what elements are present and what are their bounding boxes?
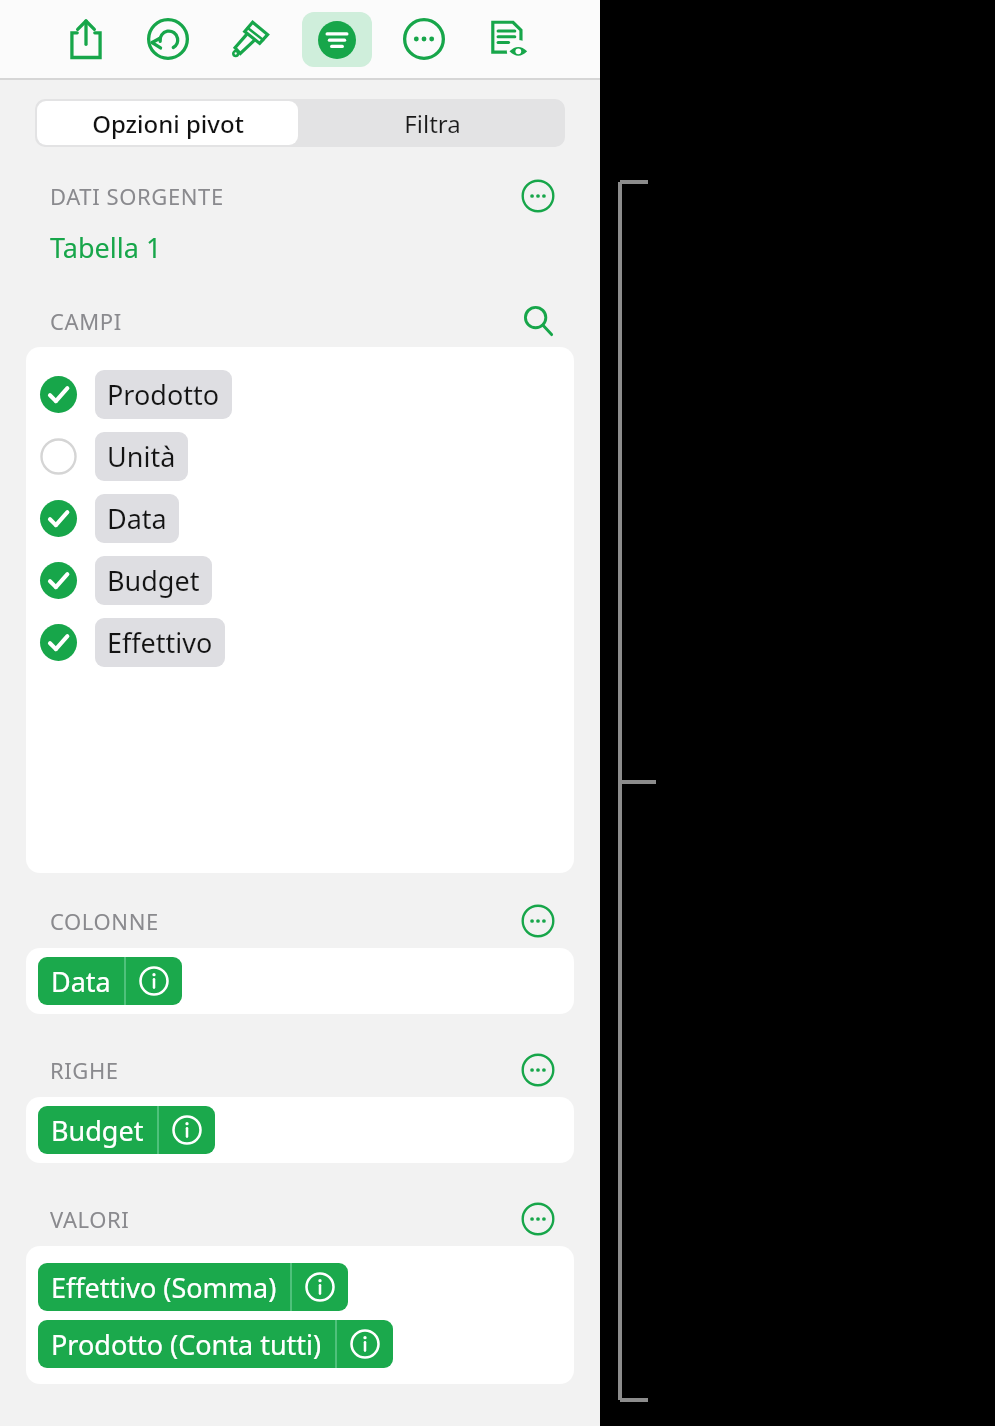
staticText: Unità: [107, 438, 176, 475]
button[interactable]: Effettivo (Somma): [38, 1263, 348, 1311]
button[interactable]: Pennello: [220, 9, 280, 69]
staticText: Budget: [107, 562, 200, 599]
button[interactable]: Opzioni colonne: [518, 904, 558, 938]
button[interactable]: Anteprima documento: [476, 9, 536, 69]
staticText: RIGHE: [50, 1055, 119, 1085]
button[interactable]: Annulla: [138, 9, 198, 69]
staticText: Budget: [51, 1112, 144, 1149]
staticText: Prodotto (Conta tutti): [51, 1326, 322, 1363]
button[interactable]: Prodotto (Conta tutti): [38, 1320, 393, 1368]
staticText: Effettivo (Somma): [51, 1269, 277, 1306]
button[interactable]: Informazioni su Budget: [159, 1106, 215, 1154]
button[interactable]: Informazioni su Prodotto (Conta tutti): [337, 1320, 393, 1368]
button[interactable]: Informazioni su Effettivo (Somma): [292, 1263, 348, 1311]
button[interactable]: Data: [38, 957, 182, 1005]
button[interactable]: Opzioni pivot: [37, 101, 298, 145]
button[interactable]: Informazioni su Data: [126, 957, 182, 1005]
staticText: Prodotto: [107, 376, 220, 413]
button[interactable]: Unità: [40, 425, 574, 487]
button[interactable]: Tabella 1: [50, 229, 162, 266]
staticText: Opzioni pivot: [92, 107, 244, 140]
staticText: COLONNE: [50, 906, 159, 936]
button[interactable]: Opzioni righe: [518, 1053, 558, 1087]
staticText: DATI SORGENTE: [50, 181, 224, 211]
button[interactable]: Effettivo: [40, 611, 574, 673]
staticText: Data: [107, 500, 167, 537]
button[interactable]: Data: [40, 487, 574, 549]
staticText: VALORI: [50, 1204, 130, 1234]
staticText: CAMPI: [50, 306, 122, 336]
button[interactable]: Filtra: [300, 99, 565, 147]
button[interactable]: Cerca campi: [518, 304, 558, 338]
button[interactable]: Formato: [302, 12, 372, 67]
button[interactable]: Altro: [394, 9, 454, 69]
button[interactable]: Budget: [38, 1106, 215, 1154]
button[interactable]: Budget: [40, 549, 574, 611]
button[interactable]: Prodotto: [40, 363, 574, 425]
button[interactable]: Condividi: [56, 9, 116, 69]
button[interactable]: Opzioni valori: [518, 1202, 558, 1236]
staticText: Effettivo: [107, 624, 213, 661]
button[interactable]: Opzioni dati sorgente: [518, 179, 558, 213]
staticText: Filtra: [404, 107, 461, 140]
staticText: Data: [51, 963, 111, 1000]
